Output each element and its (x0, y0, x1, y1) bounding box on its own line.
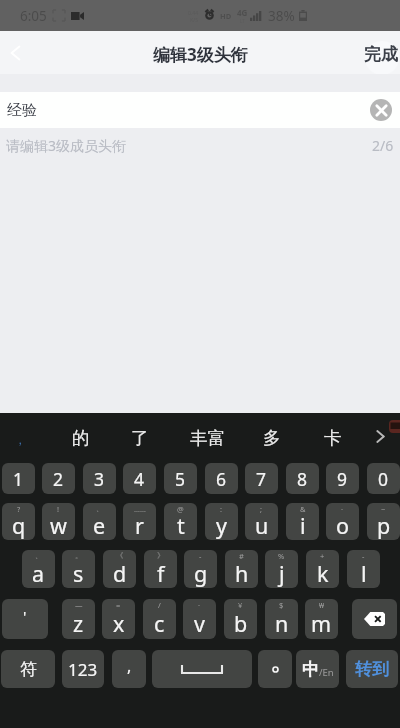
staticText: 经验 (7, 101, 37, 120)
staticText: h (235, 559, 249, 588)
button[interactable]: 1 (2, 463, 35, 494)
staticText: & (300, 504, 306, 514)
staticText: 中 (302, 659, 319, 680)
staticText: 4G (237, 7, 248, 18)
staticText: w (50, 511, 67, 540)
staticText: 6 (216, 467, 227, 491)
staticText: 符 (20, 659, 37, 680)
staticText: /En (319, 666, 334, 679)
button[interactable]: $ (265, 599, 298, 639)
button[interactable]: Period (258, 650, 292, 688)
button[interactable]: % (265, 550, 298, 588)
staticText: + (320, 551, 325, 561)
button[interactable]: ; (245, 503, 278, 540)
button[interactable]: 9 (326, 463, 359, 494)
staticText: i (300, 511, 306, 540)
button[interactable]: = (102, 599, 135, 639)
staticText: : (220, 504, 223, 514)
staticText: j (279, 559, 285, 588)
button[interactable]: 多 (259, 413, 285, 458)
button[interactable]: Clear text (370, 99, 392, 121)
button[interactable]: 了 (127, 413, 153, 458)
staticText: 、 (35, 551, 43, 560)
button[interactable]: / (143, 599, 176, 639)
button[interactable]: 中 (296, 650, 339, 688)
staticText: e (93, 511, 106, 540)
button[interactable]: 》 (144, 550, 177, 588)
staticText: q (12, 511, 26, 540)
staticText: b (234, 609, 248, 638)
staticText: g (194, 559, 208, 588)
button[interactable]: ¥ (224, 599, 257, 639)
button[interactable]: Comma (6, 413, 36, 458)
staticText: ; (260, 504, 263, 514)
staticText: k (317, 559, 329, 588)
staticText: 123 (68, 658, 98, 681)
staticText: f (157, 559, 165, 588)
button[interactable]: Backspace (352, 599, 397, 639)
staticText: 《 (116, 551, 124, 560)
staticText: 4 (134, 467, 145, 491)
button[interactable]: 。 (62, 550, 95, 588)
button[interactable]: ' (2, 599, 48, 639)
button[interactable]: : (205, 503, 238, 540)
staticText: d (113, 559, 127, 588)
button[interactable]: - (347, 550, 380, 588)
staticText: ₩ (319, 600, 325, 610)
button[interactable]: 完成 (358, 31, 400, 74)
button[interactable]: Emoji (389, 420, 400, 433)
button[interactable]: 卡 (320, 413, 346, 458)
button[interactable]: 符 (1, 650, 55, 688)
button[interactable]: + (306, 550, 339, 588)
staticText: z (73, 609, 84, 638)
button[interactable]: 丰富 (185, 413, 229, 458)
staticText: c (154, 609, 165, 638)
button[interactable]: - (184, 550, 217, 588)
staticText: 卡 (324, 427, 342, 449)
button[interactable]: ₩ (305, 599, 338, 639)
button[interactable]: @ (164, 503, 197, 540)
staticText: 。 (75, 551, 83, 560)
staticText: - (199, 551, 202, 561)
button[interactable]: , (112, 650, 146, 688)
button[interactable]: 的 (68, 413, 94, 458)
button[interactable]: # (225, 550, 258, 588)
button[interactable]: — (62, 599, 95, 639)
staticText: 6:05 (20, 7, 47, 25)
staticText: 转到 (355, 659, 389, 680)
button[interactable]: 0 (367, 463, 400, 494)
button[interactable]: …… (123, 503, 156, 540)
button[interactable]: ! (42, 503, 75, 540)
staticText: t (177, 511, 185, 540)
button[interactable]: 6 (205, 463, 238, 494)
button[interactable]: 、 (83, 503, 116, 540)
button[interactable]: 4 (123, 463, 156, 494)
button[interactable]: 3 (83, 463, 116, 494)
staticText: 丰富 (190, 427, 225, 449)
staticText: 38% (268, 7, 295, 25)
staticText: 8 (297, 467, 308, 491)
staticText: 请编辑3级成员头衔 (6, 136, 127, 155)
button[interactable]: ? (2, 503, 35, 540)
button[interactable]: 《 (103, 550, 136, 588)
button[interactable]: 、 (22, 550, 55, 588)
staticText: 多 (263, 427, 281, 449)
button[interactable]: & (286, 503, 319, 540)
button[interactable]: 8 (286, 463, 319, 494)
button[interactable]: 5 (164, 463, 197, 494)
button[interactable]: 123 (62, 650, 104, 688)
button[interactable]: · (326, 503, 359, 540)
button[interactable]: ~ (367, 503, 400, 540)
button[interactable]: 7 (245, 463, 278, 494)
button[interactable]: Space (152, 650, 252, 688)
staticText: 7 (256, 467, 267, 491)
button[interactable]: More candidates (366, 413, 394, 458)
staticText: x (113, 609, 125, 638)
button[interactable]: 2 (42, 463, 75, 494)
button[interactable]: · (183, 599, 216, 639)
button[interactable]: 转到 (346, 650, 398, 688)
